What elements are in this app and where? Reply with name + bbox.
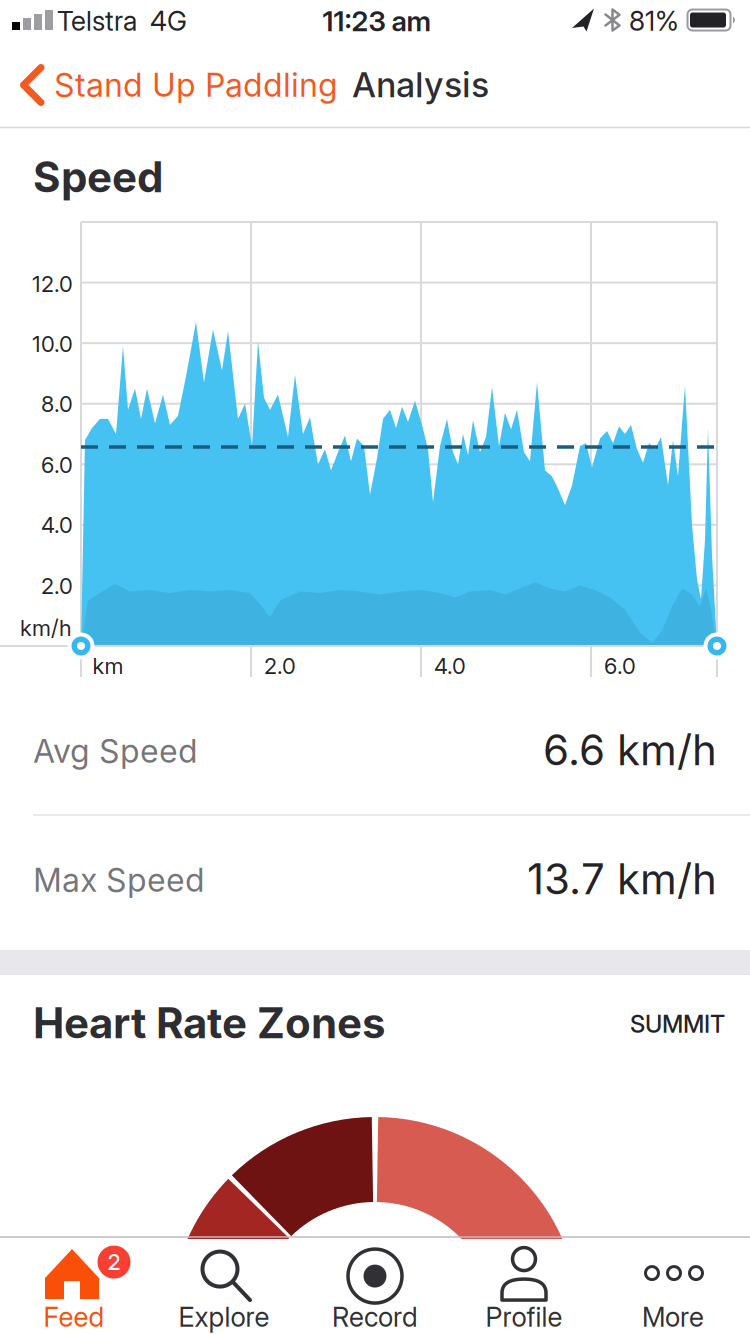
staticText: 6.0 [41,452,73,478]
staticText: 4G [150,5,187,37]
button[interactable]: Record [301,1240,449,1334]
staticText: Analysis [352,65,489,105]
staticText: 4.0 [434,653,466,679]
staticText: km [92,653,123,679]
staticText: 2.0 [264,653,296,679]
staticText: 6.0 [604,653,636,679]
staticText: Telstra [57,5,137,37]
staticText: km/h [20,615,72,641]
staticText: 6.6 km/h [543,725,717,775]
staticText: 4.0 [41,512,73,538]
staticText: SUMMIT [630,1010,725,1038]
staticText: Profile [485,1301,562,1333]
staticText: 81% [629,5,679,37]
staticText: More [642,1301,704,1333]
staticText: Avg Speed [33,732,198,770]
staticText: Explore [178,1301,269,1333]
staticText: Record [332,1301,418,1333]
staticText: 2 [107,1249,120,1275]
staticText: 11:23 am [322,4,431,37]
staticText: 12.0 [32,271,73,297]
button[interactable]: More [599,1240,747,1334]
button[interactable]: Profile [450,1240,598,1334]
staticText: Stand Up Paddling [54,66,338,104]
button[interactable]: Back [20,53,440,117]
staticText: Max Speed [33,861,205,899]
staticText: 13.7 km/h [527,854,717,904]
staticText: 8.0 [41,391,73,417]
staticText: 2.0 [41,573,73,599]
staticText: Heart Rate Zones [33,998,386,1048]
button[interactable]: Explore [150,1240,298,1334]
button[interactable]: 2 [0,1240,148,1334]
staticText: Feed [43,1301,104,1333]
staticText: 10.0 [32,331,73,357]
staticText: Speed [33,152,163,202]
